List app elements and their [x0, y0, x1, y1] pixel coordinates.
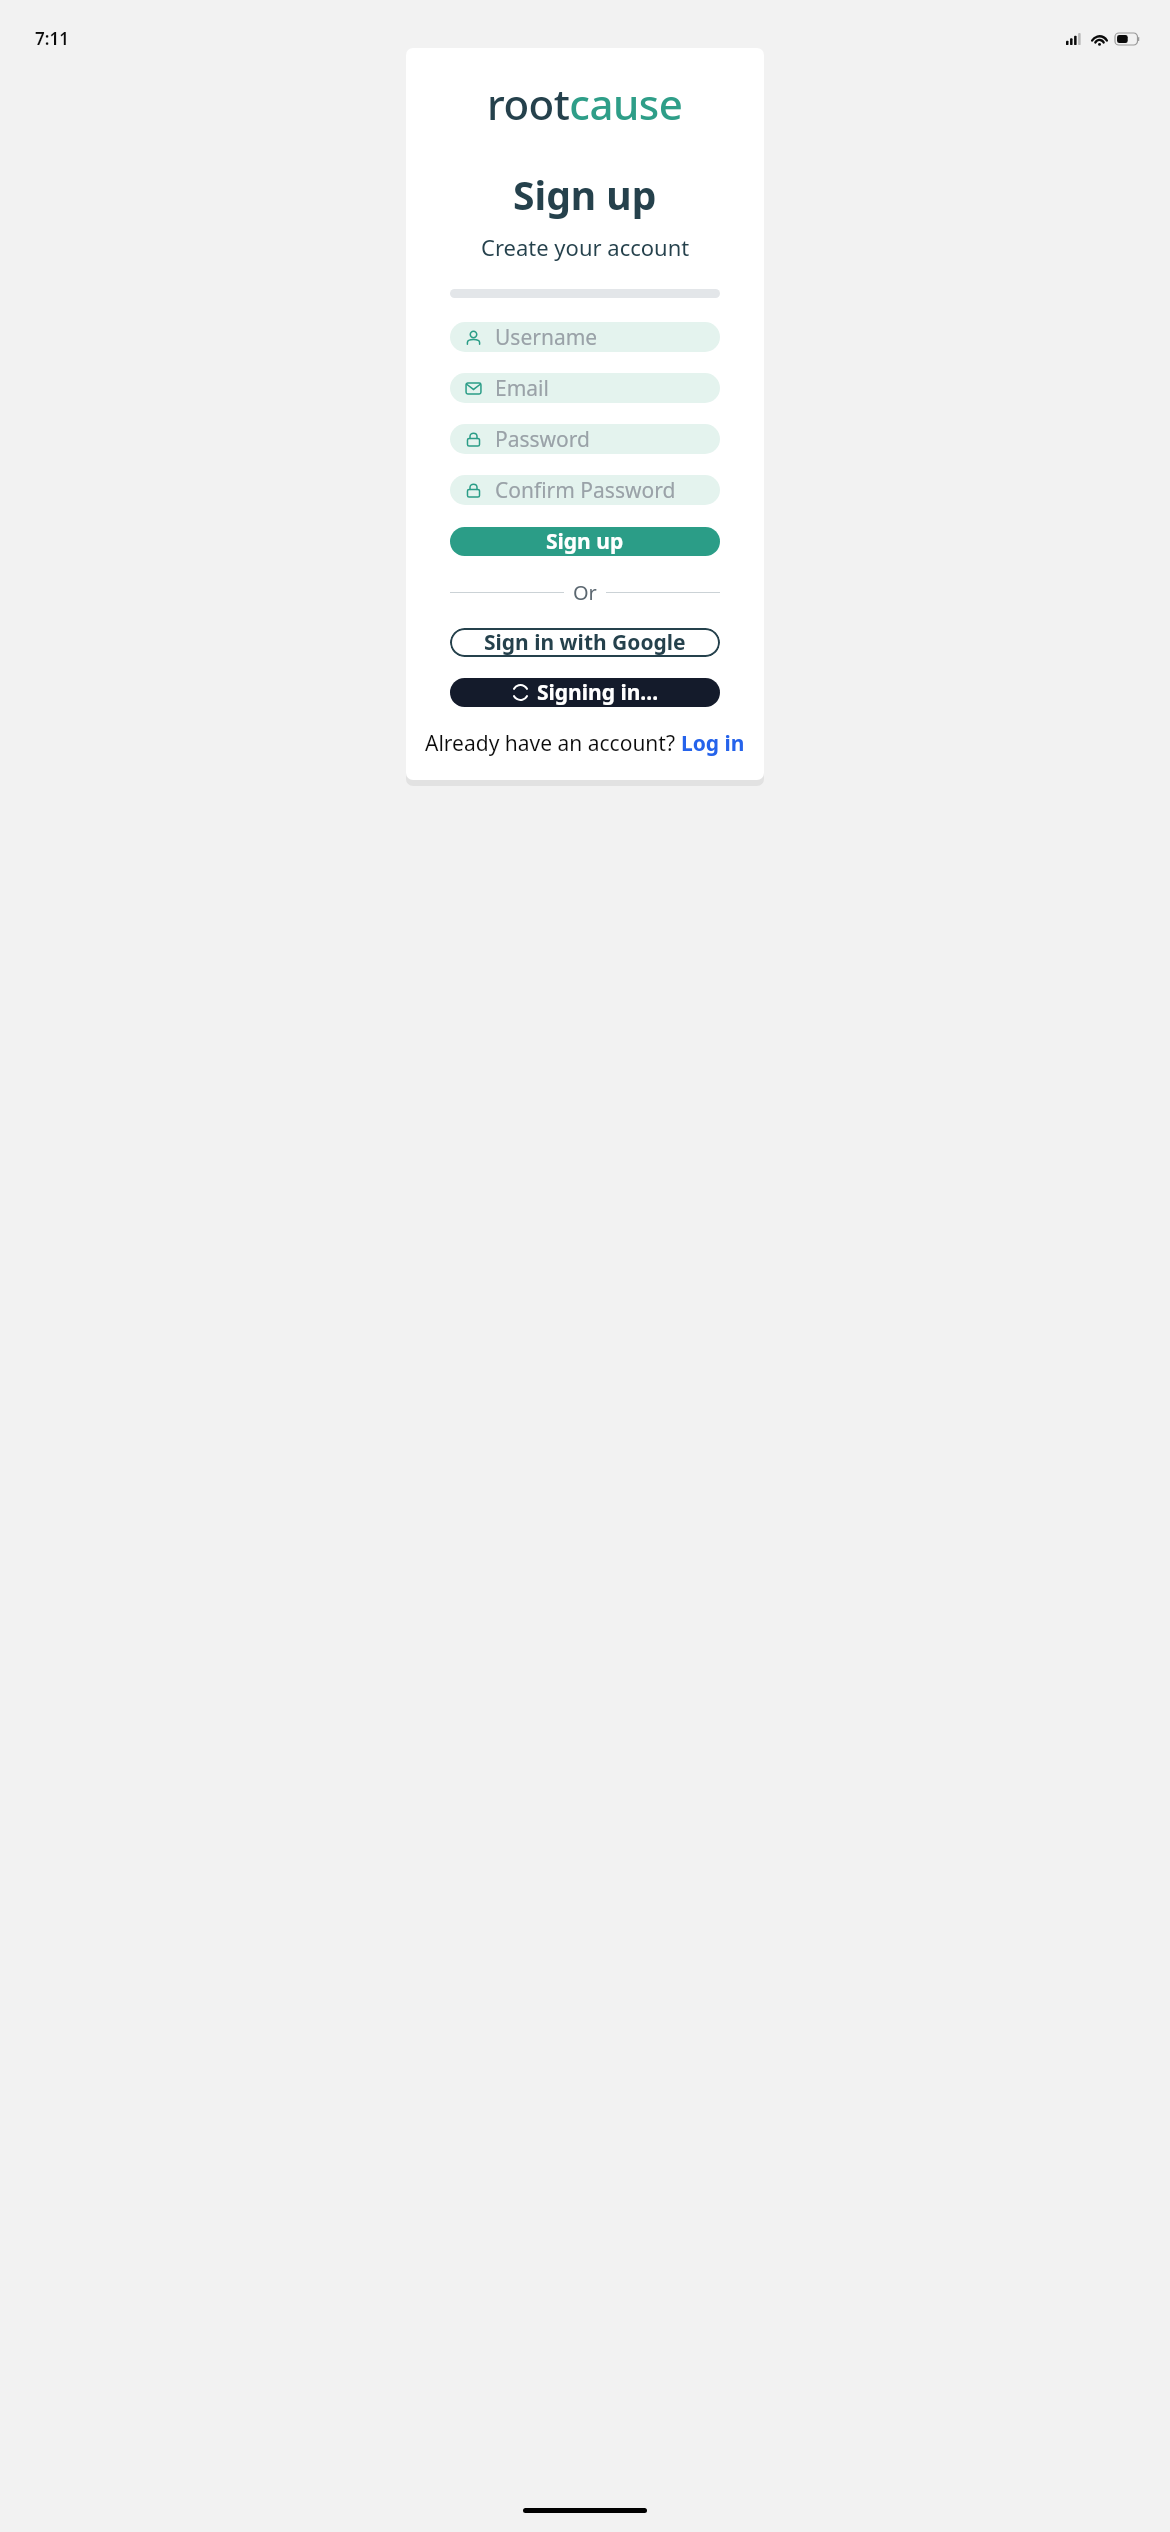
other: Loading [512, 684, 529, 701]
staticText: Sign up [546, 527, 624, 556]
other: Password [464, 481, 483, 500]
staticText: Or [573, 579, 597, 606]
staticText: Signing in... [537, 678, 659, 707]
button[interactable]: Sign in with Google [450, 628, 720, 657]
staticText: Already have an account? [425, 729, 681, 758]
button[interactable]: Password [450, 475, 720, 505]
staticText: Log in [681, 729, 745, 758]
other: Email [464, 379, 483, 398]
staticText: Confirm Password [495, 476, 676, 505]
staticText: rootcause [487, 75, 683, 132]
button[interactable]: Loading [450, 678, 720, 707]
staticText: 7:11 [35, 27, 69, 50]
staticText: Username [495, 323, 598, 352]
button[interactable]: Username [450, 322, 720, 352]
button[interactable]: Already have an account? [425, 729, 745, 758]
button[interactable]: Sign up [450, 527, 720, 556]
other: Username [464, 328, 483, 347]
staticText: Sign up [513, 168, 657, 221]
staticText: Sign in with Google [484, 628, 686, 657]
button[interactable]: Email [450, 373, 720, 403]
button[interactable]: Password [450, 424, 720, 454]
staticText: Create your account [481, 232, 690, 262]
other: Password [464, 430, 483, 449]
staticText: Email [495, 374, 549, 403]
staticText: Password [495, 425, 590, 454]
